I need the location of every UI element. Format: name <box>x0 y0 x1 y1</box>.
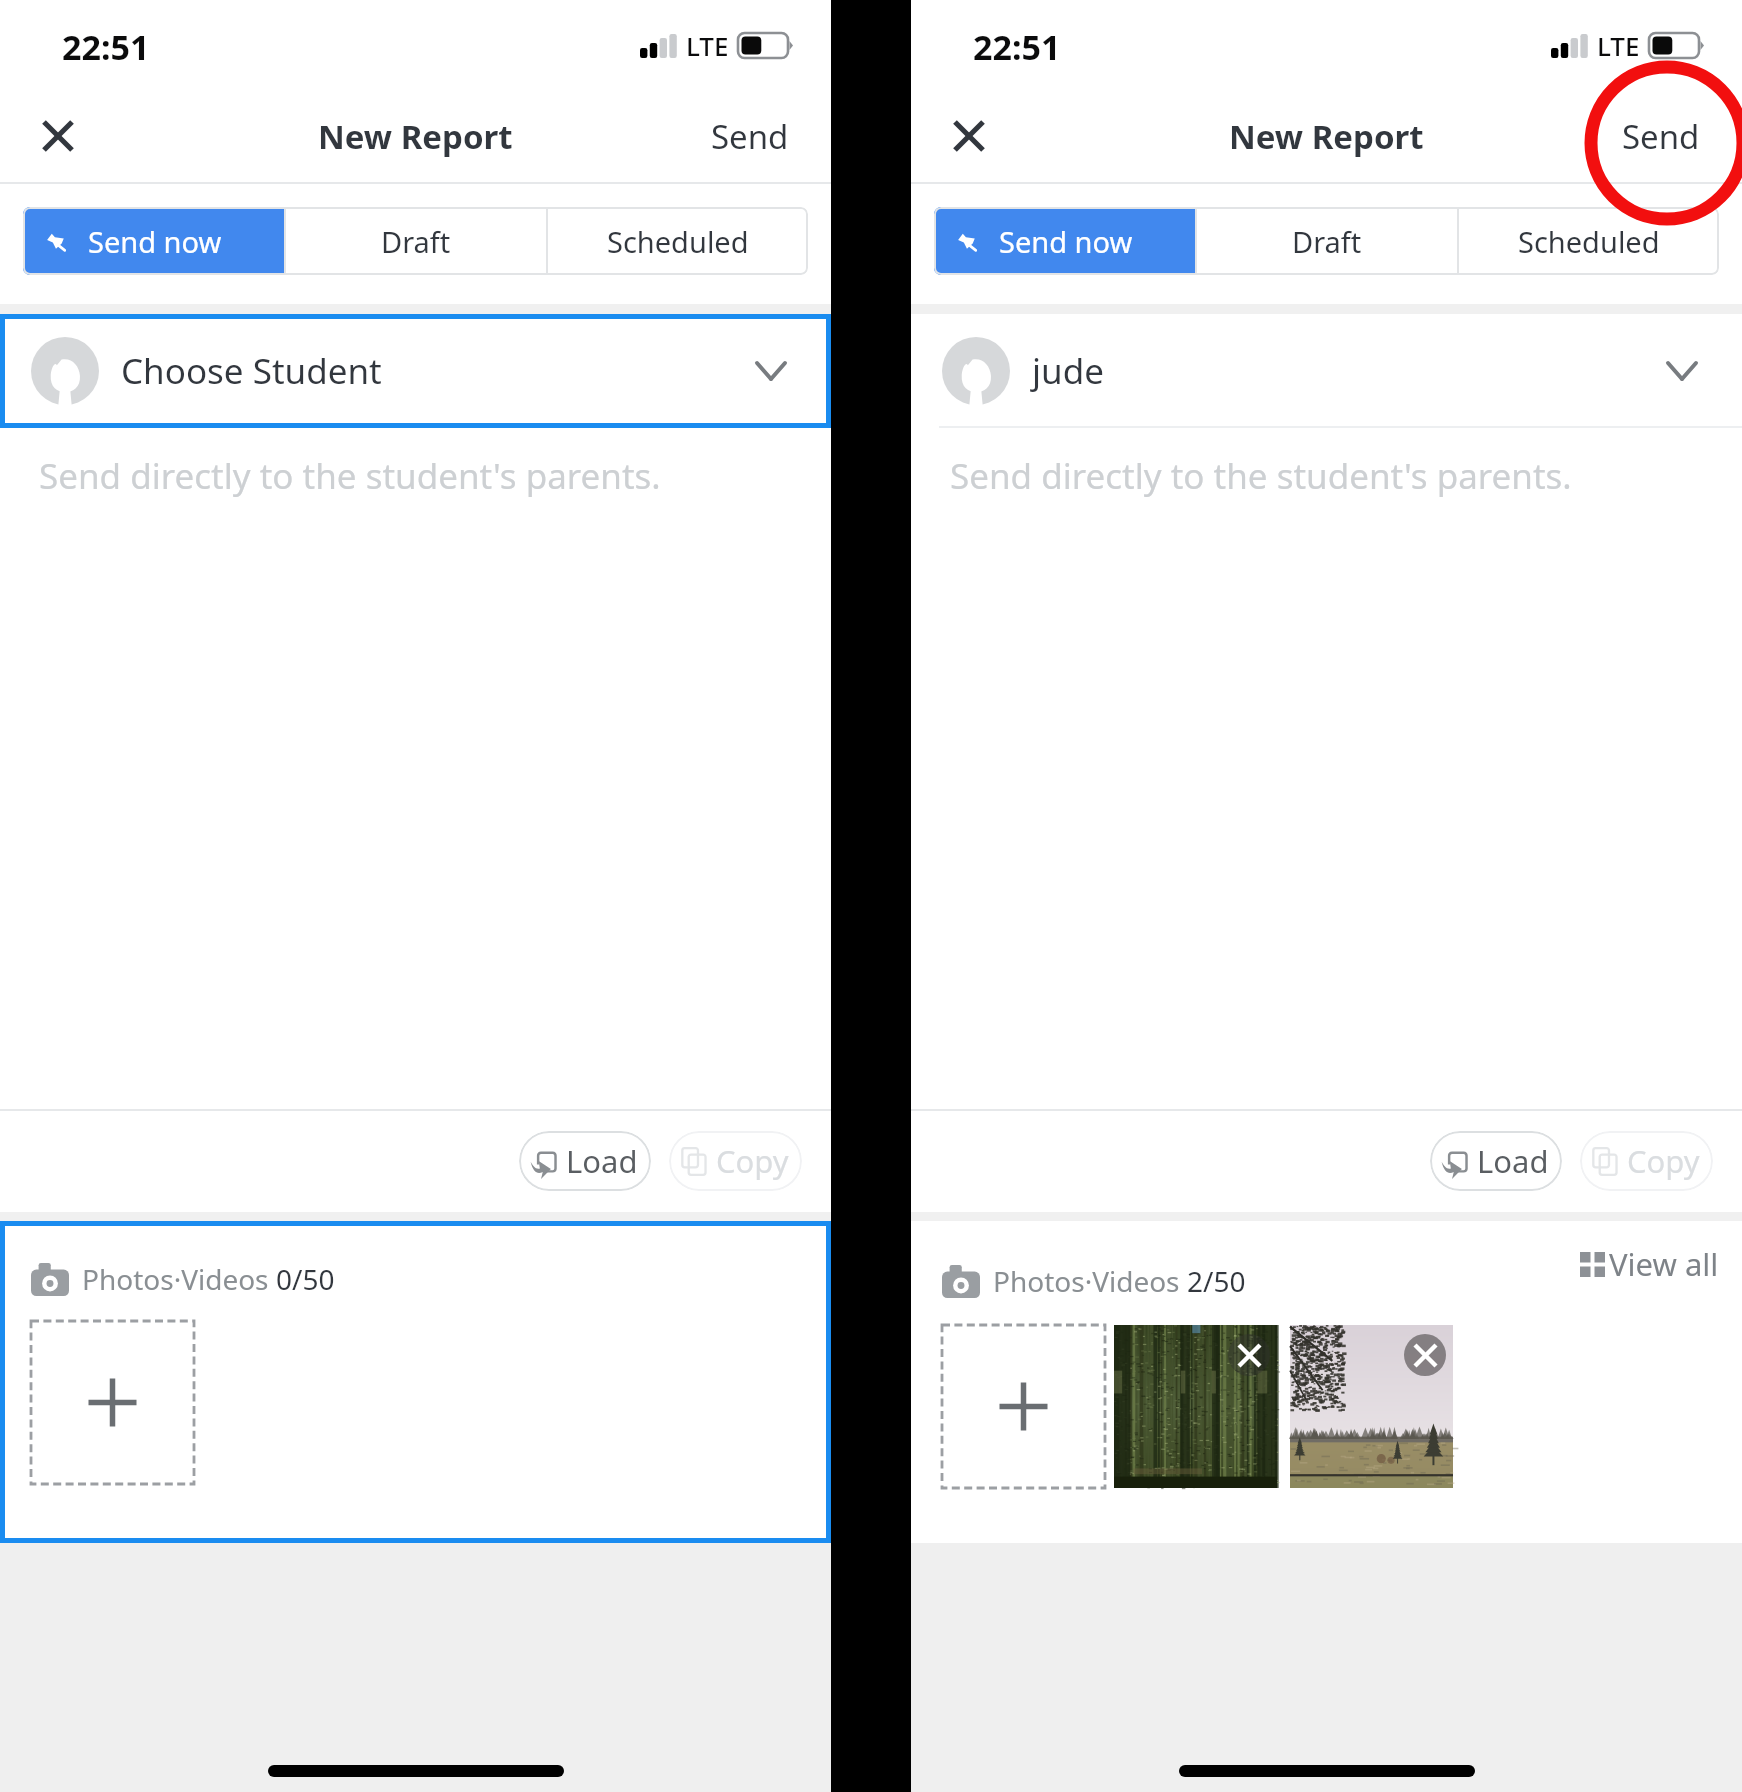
staticText: Load <box>566 1140 638 1182</box>
button[interactable]: Add photo <box>31 1321 194 1484</box>
staticText: Send <box>711 114 789 159</box>
staticText: Draft <box>381 222 451 261</box>
button[interactable]: Close <box>933 100 1005 172</box>
staticText: New Report <box>318 114 513 159</box>
button[interactable]: Send now <box>934 207 1195 275</box>
staticText: 22:51 <box>973 24 1061 70</box>
staticText: LTE <box>686 28 729 63</box>
staticText: Choose Student <box>121 347 382 395</box>
button[interactable]: Draft <box>1197 207 1457 275</box>
staticText: 22:51 <box>62 24 150 70</box>
staticText: jude <box>1032 347 1104 395</box>
staticText: New Report <box>1229 114 1424 159</box>
button[interactable]: Remove photo <box>1228 1334 1270 1376</box>
button[interactable]: Send <box>701 100 799 173</box>
button[interactable]: jude <box>911 314 1742 428</box>
staticText: Draft <box>1292 222 1362 261</box>
staticText: Photos·Videos <box>993 1262 1187 1300</box>
staticText: Copy <box>716 1140 789 1182</box>
button[interactable]: Add photo <box>942 1325 1105 1488</box>
staticText: 0/50 <box>276 1260 335 1298</box>
staticText: 2/50 <box>1187 1262 1246 1300</box>
button[interactable]: Send <box>1612 100 1710 173</box>
button[interactable]: Scheduled <box>548 207 808 275</box>
button[interactable]: Draft <box>286 207 546 275</box>
button[interactable]: Remove photo <box>1404 1334 1446 1376</box>
staticText: Copy <box>1627 1140 1700 1182</box>
staticText: Load <box>1477 1140 1549 1182</box>
button[interactable]: View all <box>1580 1243 1742 1285</box>
staticText: Send now <box>88 222 222 261</box>
staticText: LTE <box>1597 28 1640 63</box>
button[interactable]: Scheduled <box>1459 207 1719 275</box>
button[interactable]: Copy <box>1580 1131 1713 1191</box>
staticText: Send directly to the student's parents. <box>39 452 661 500</box>
button[interactable]: Close <box>22 100 94 172</box>
button[interactable]: Choose Student <box>0 314 831 428</box>
staticText: Photos·Videos <box>82 1260 276 1298</box>
button[interactable]: Send now <box>23 207 284 275</box>
button[interactable]: Copy <box>669 1131 802 1191</box>
staticText: View all <box>1609 1243 1719 1285</box>
staticText: Send directly to the student's parents. <box>950 452 1572 500</box>
staticText: Scheduled <box>1518 222 1660 261</box>
staticText: Send <box>1622 114 1700 159</box>
staticText: Scheduled <box>607 222 749 261</box>
staticText: Send now <box>999 222 1133 261</box>
button[interactable]: Load <box>519 1131 651 1191</box>
button[interactable]: Load <box>1430 1131 1562 1191</box>
